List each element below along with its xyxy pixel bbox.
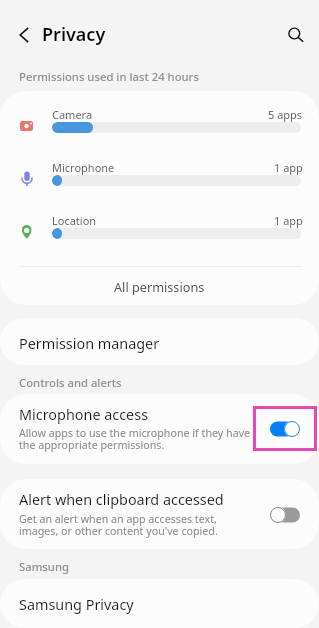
staticText: Controls and alerts — [19, 375, 122, 390]
staticText: Camera — [52, 107, 93, 122]
button[interactable]: Location — [0, 206, 319, 259]
staticText: 1 app — [274, 160, 303, 175]
button[interactable]: Search — [277, 16, 311, 50]
staticText: 5 apps — [268, 107, 303, 122]
staticText: Location — [52, 213, 97, 228]
staticText: Samsung Privacy — [19, 595, 134, 615]
staticText: Microphone — [52, 160, 115, 175]
button[interactable]: Permission manager — [0, 318, 319, 365]
button[interactable]: Alert when clipboard accessed — [270, 506, 300, 524]
button[interactable]: Navigate up — [7, 18, 41, 52]
staticText: Privacy — [42, 22, 106, 47]
button[interactable]: Alert when clipboard accessed — [0, 479, 319, 549]
button[interactable]: Microphone access — [270, 420, 300, 438]
staticText: 1 app — [274, 213, 303, 228]
button[interactable]: Microphone — [0, 153, 319, 206]
staticText: Samsung — [19, 559, 70, 574]
staticText: Alert when clipboard accessed — [19, 490, 224, 510]
staticText: Permission manager — [19, 334, 160, 354]
staticText: Permissions used in last 24 hours — [19, 69, 199, 84]
staticText: Microphone access — [19, 405, 149, 425]
button[interactable]: Microphone access — [0, 394, 319, 464]
staticText: Allow apps to use the microphone if they… — [19, 426, 253, 453]
button[interactable]: All permissions — [0, 267, 319, 305]
button[interactable]: Camera — [0, 100, 319, 153]
staticText: Get an alert when an app accesses text, … — [19, 512, 234, 539]
button[interactable]: Samsung Privacy — [0, 579, 319, 628]
staticText: All permissions — [114, 278, 205, 295]
